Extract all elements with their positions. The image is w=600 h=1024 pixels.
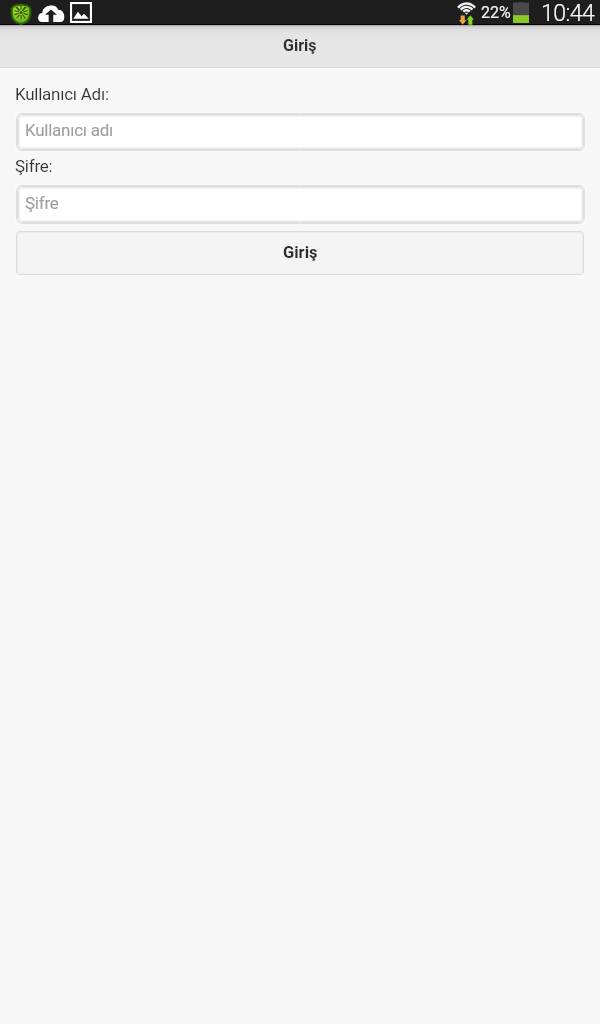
other: Security <box>10 2 32 24</box>
staticText: Kullanıcı adı <box>25 120 114 140</box>
other: Wi-Fi <box>455 1 478 24</box>
button[interactable]: Şifre <box>15 184 586 225</box>
staticText: 22% <box>481 3 511 22</box>
other: Battery <box>513 1 529 24</box>
button[interactable]: Kullanıcı adı <box>15 112 586 152</box>
staticText: Şifre: <box>15 156 53 176</box>
staticText: 10:44 <box>541 0 595 25</box>
staticText: Kullanıcı Adı: <box>15 84 109 104</box>
staticText: Şifre <box>25 193 59 213</box>
button[interactable]: Giriş <box>16 231 584 275</box>
staticText: Giriş <box>283 243 318 262</box>
other: Upload <box>38 4 65 22</box>
other: Gallery <box>70 2 92 23</box>
staticText: Giriş <box>283 36 317 55</box>
